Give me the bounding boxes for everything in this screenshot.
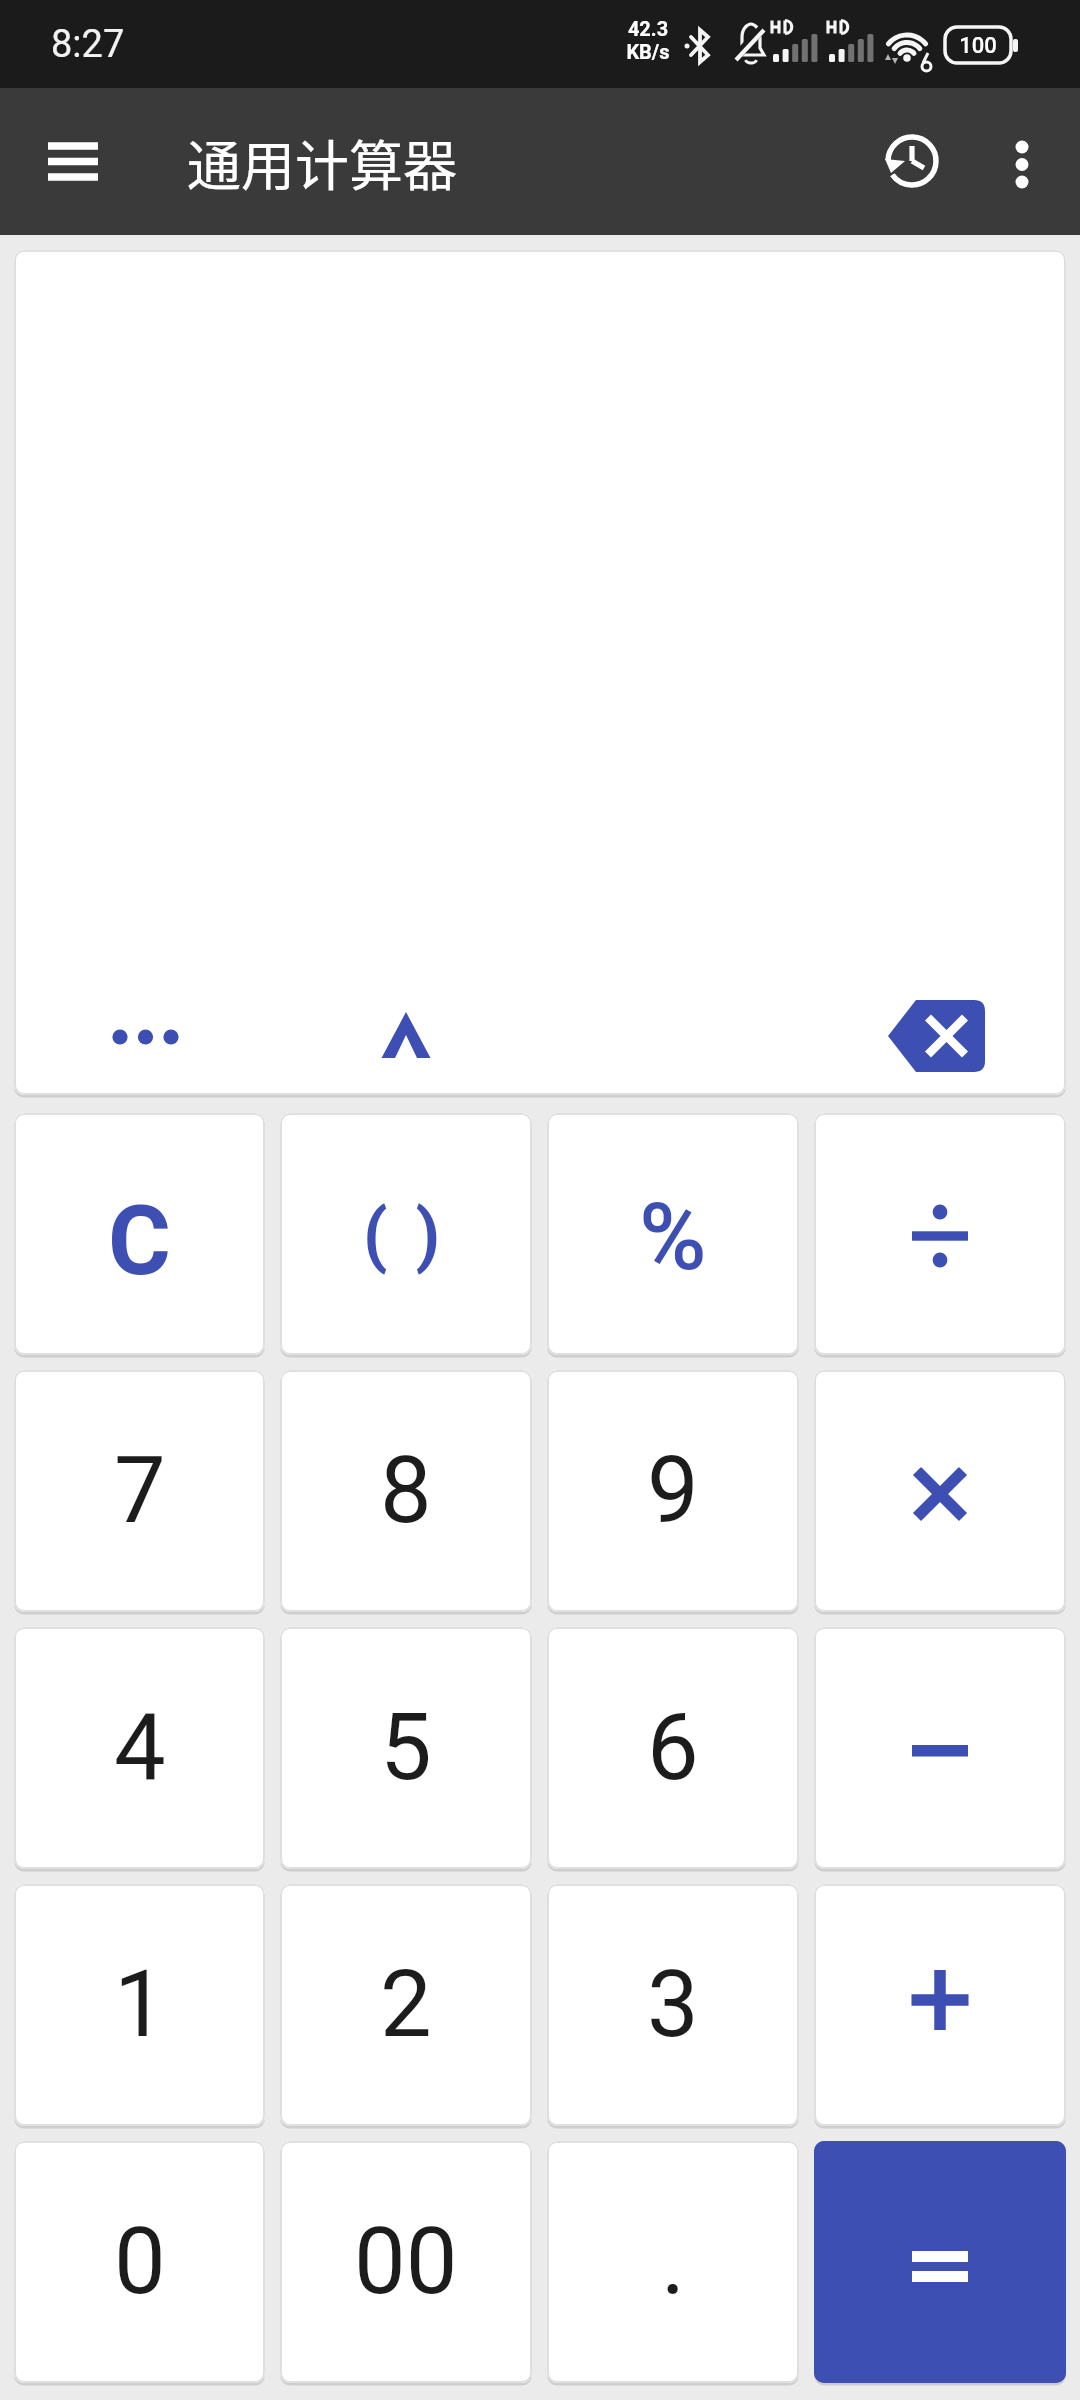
staticText: 42.3 [621, 17, 675, 40]
staticText: 通用计算器 [187, 123, 457, 201]
button[interactable] [90, 1007, 200, 1067]
button[interactable] [376, 1007, 436, 1067]
button[interactable]: 6 [547, 1627, 799, 1869]
button[interactable]: % [547, 1113, 799, 1355]
button[interactable]: . [547, 2141, 799, 2383]
staticText: 6 [647, 1694, 699, 1802]
button[interactable]: C [14, 1113, 265, 1355]
staticText: . [661, 2208, 686, 2316]
staticText: 5 [380, 1694, 432, 1802]
button[interactable]: 1 [14, 1884, 265, 2126]
staticText: 7 [114, 1437, 166, 1545]
button[interactable]: 3 [547, 1884, 799, 2126]
button[interactable]: 8 [280, 1370, 532, 1612]
button[interactable]: 4 [14, 1627, 265, 1869]
staticText: 8 [380, 1437, 432, 1545]
staticText: 8:27 [51, 22, 125, 67]
button[interactable]: 5 [280, 1627, 532, 1869]
staticText: 3 [647, 1951, 699, 2059]
button[interactable]: 7 [14, 1370, 265, 1612]
button[interactable] [814, 1370, 1066, 1612]
button[interactable]: 00 [280, 2141, 532, 2383]
staticText: KB/s [621, 40, 675, 63]
staticText: 1 [114, 1951, 166, 2059]
staticText: 9 [647, 1437, 699, 1545]
staticText: () [363, 1194, 469, 1276]
staticText: 2 [380, 1951, 432, 2059]
button[interactable] [814, 1627, 1066, 1869]
button[interactable]: 0 [14, 2141, 265, 2383]
staticText: 4 [114, 1694, 166, 1802]
button[interactable] [814, 1113, 1066, 1355]
button[interactable]: () [280, 1113, 532, 1355]
button[interactable]: 9 [547, 1370, 799, 1612]
staticText: % [639, 1184, 707, 1292]
staticText: 00 [354, 2208, 458, 2316]
button[interactable]: 2 [280, 1884, 532, 2126]
button[interactable] [34, 131, 114, 201]
button[interactable] [992, 124, 1052, 204]
staticText: 100 [948, 33, 1008, 59]
staticText: C [108, 1185, 171, 1298]
button[interactable] [876, 988, 996, 1084]
button[interactable] [872, 120, 952, 200]
button[interactable] [814, 2141, 1066, 2383]
staticText: 0 [114, 2208, 166, 2316]
button[interactable] [814, 1884, 1066, 2126]
